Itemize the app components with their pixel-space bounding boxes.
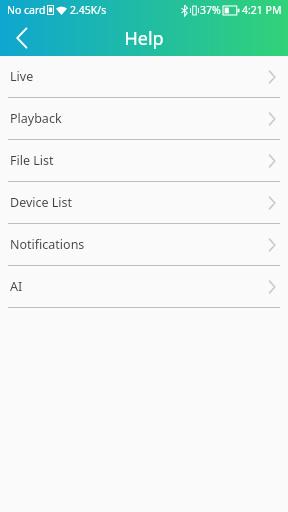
- button[interactable]: File List: [0, 140, 288, 181]
- staticText: Live: [10, 68, 268, 85]
- staticText: 4:21 PM: [242, 3, 282, 17]
- staticText: No card: [7, 3, 46, 17]
- staticText: Device List: [10, 194, 268, 211]
- button[interactable]: Notifications: [0, 224, 288, 265]
- staticText: Notifications: [10, 236, 268, 253]
- staticText: Help: [124, 26, 164, 51]
- staticText: 37%: [200, 3, 221, 17]
- button[interactable]: Playback: [0, 98, 288, 139]
- button[interactable]: Back: [0, 20, 44, 56]
- staticText: File List: [10, 152, 268, 169]
- staticText: 2.45K/s: [70, 3, 107, 17]
- staticText: AI: [10, 278, 268, 295]
- button[interactable]: Device List: [0, 182, 288, 223]
- staticText: Playback: [10, 110, 268, 127]
- button[interactable]: AI: [0, 266, 288, 307]
- button[interactable]: Live: [0, 56, 288, 97]
